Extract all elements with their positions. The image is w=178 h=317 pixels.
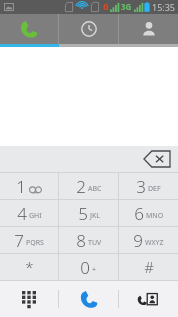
staticText: 3: [136, 175, 146, 198]
staticText: 1: [16, 175, 26, 198]
staticText: *: [25, 257, 34, 277]
button[interactable]: Recents: [59, 14, 118, 44]
staticText: 2: [76, 175, 86, 198]
staticText: 7: [14, 229, 24, 252]
button[interactable]: 2: [59, 173, 118, 199]
button[interactable]: 3: [119, 173, 178, 199]
button[interactable]: *: [0, 254, 58, 280]
button[interactable]: 7: [0, 227, 58, 253]
staticText: WXYZ: [145, 238, 164, 248]
staticText: PQRS: [26, 238, 44, 248]
staticText: 5: [78, 202, 88, 225]
button[interactable]: Keypad: [0, 281, 58, 317]
button[interactable]: 1: [0, 173, 58, 199]
staticText: 9: [133, 229, 143, 252]
button[interactable]: Dialer: [0, 14, 58, 44]
staticText: 8: [76, 229, 86, 252]
staticText: ABC: [88, 184, 102, 194]
button[interactable]: Contacts: [119, 14, 178, 44]
staticText: 6: [134, 202, 144, 225]
staticText: #: [144, 257, 154, 277]
button[interactable]: #: [119, 254, 178, 280]
staticText: 15:35: [152, 1, 176, 13]
staticText: 4: [17, 202, 27, 225]
button[interactable]: 9: [119, 227, 178, 253]
button[interactable]: 8: [59, 227, 118, 253]
staticText: 0: [80, 256, 90, 279]
button[interactable]: 6: [119, 200, 178, 226]
staticText: +: [92, 265, 97, 275]
button[interactable]: 0: [59, 254, 118, 280]
staticText: DEF: [148, 184, 161, 194]
staticText: TUV: [88, 238, 102, 248]
button[interactable]: Backspace: [142, 149, 172, 169]
staticText: JKL: [90, 211, 100, 221]
button[interactable]: Contacts: [119, 281, 178, 317]
button[interactable]: 5: [59, 200, 118, 226]
staticText: MNO: [146, 211, 164, 221]
staticText: G: [103, 1, 109, 12]
button[interactable]: 4: [0, 200, 58, 226]
button[interactable]: Call: [59, 281, 118, 317]
staticText: GHI: [29, 211, 42, 221]
staticText: 3G: [121, 1, 132, 12]
